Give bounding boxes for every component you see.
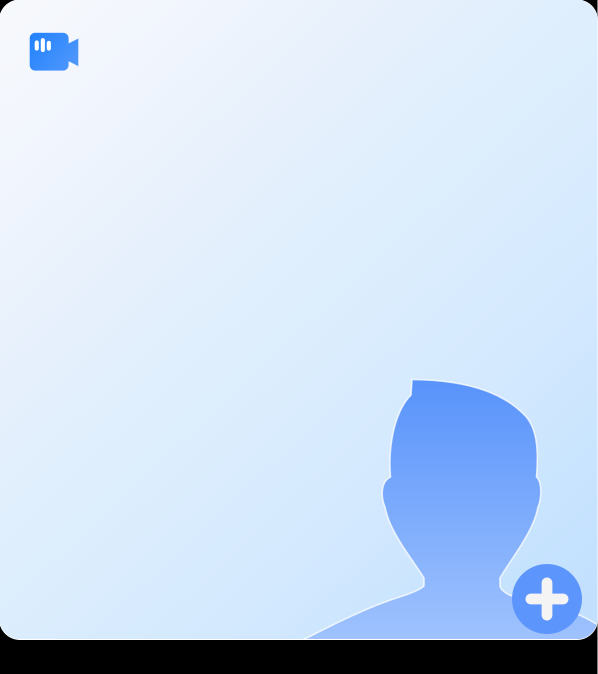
button[interactable]: Add person xyxy=(512,564,582,634)
button[interactable]: Video xyxy=(0,0,597,639)
